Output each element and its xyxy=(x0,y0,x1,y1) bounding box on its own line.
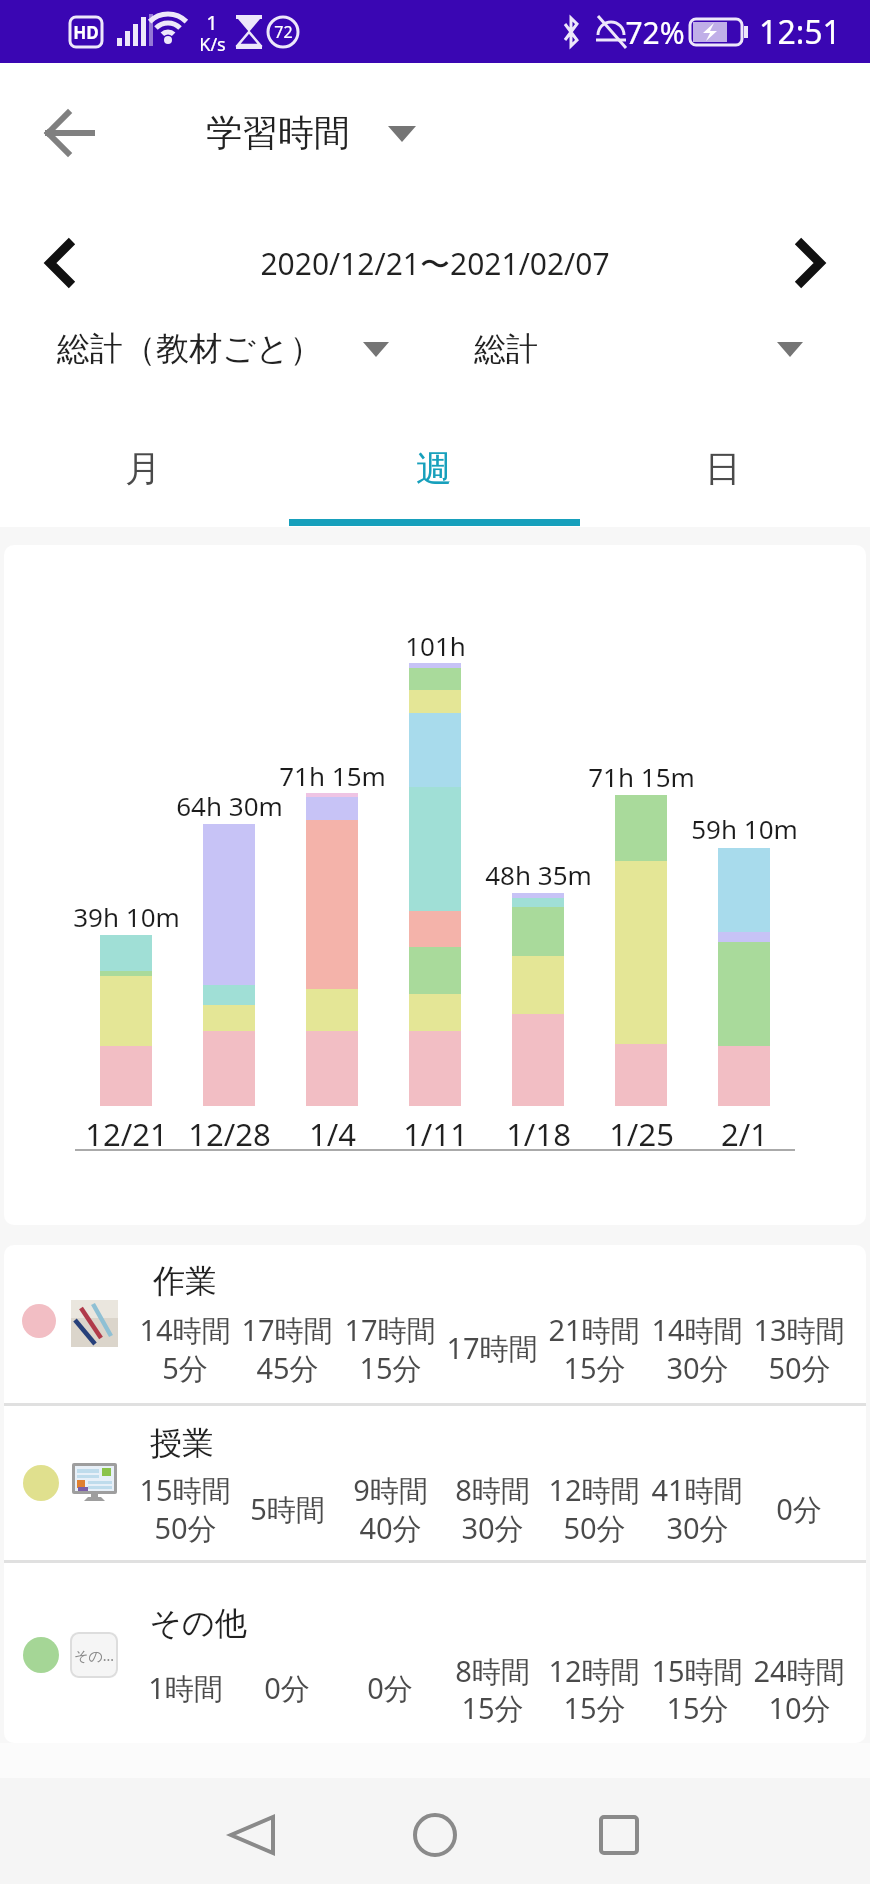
staticText: 1時間 xyxy=(148,1668,223,1708)
button[interactable] xyxy=(576,1793,661,1878)
button[interactable] xyxy=(580,430,870,527)
staticText: 64h 30m xyxy=(176,788,283,823)
staticText: 8時間 xyxy=(455,1470,530,1510)
button[interactable] xyxy=(392,1793,477,1878)
staticText: 12時間 xyxy=(548,1470,640,1510)
staticText: 50分 xyxy=(563,1508,626,1548)
staticText: 72 xyxy=(274,21,293,43)
staticText: 15時間 xyxy=(651,1651,743,1691)
staticText: 15時間 xyxy=(139,1470,231,1510)
staticText: 2/1 xyxy=(721,1113,768,1155)
staticText: 1/25 xyxy=(609,1113,674,1155)
staticText: 15分 xyxy=(666,1688,729,1728)
button[interactable] xyxy=(210,1793,295,1878)
staticText: 0分 xyxy=(367,1668,413,1708)
staticText: 2020/12/21〜2021/02/07 xyxy=(260,243,610,284)
staticText: 15分 xyxy=(563,1688,626,1728)
button[interactable] xyxy=(4,1406,866,1560)
staticText: 12:51 xyxy=(759,10,841,54)
staticText: K/s xyxy=(199,32,226,57)
staticText: 0分 xyxy=(776,1489,822,1529)
staticText: 13時間 xyxy=(753,1310,845,1350)
staticText: 日 xyxy=(705,446,741,491)
staticText: 71h 15m xyxy=(279,758,386,793)
staticText: 0分 xyxy=(264,1668,310,1708)
staticText: 学習時間 xyxy=(206,110,350,155)
staticText: 総計 xyxy=(474,329,538,369)
staticText: 30分 xyxy=(461,1508,524,1548)
staticText: 15分 xyxy=(359,1348,422,1388)
staticText: 50分 xyxy=(154,1508,217,1548)
staticText: 45分 xyxy=(256,1348,319,1388)
staticText: 48h 35m xyxy=(485,857,592,892)
staticText: 週 xyxy=(416,446,452,491)
button[interactable] xyxy=(40,318,400,380)
staticText: 14時間 xyxy=(139,1310,231,1350)
staticText: その他 xyxy=(149,1603,247,1643)
staticText: HD xyxy=(73,21,99,44)
staticText: 15分 xyxy=(563,1348,626,1388)
staticText: 授業 xyxy=(150,1423,214,1463)
staticText: 15分 xyxy=(461,1688,524,1728)
staticText: 5分 xyxy=(162,1348,208,1388)
staticText: 12時間 xyxy=(548,1651,640,1691)
staticText: 30分 xyxy=(666,1508,729,1548)
staticText: 101h xyxy=(405,628,466,663)
staticText: 17時間 xyxy=(241,1310,333,1350)
staticText: 作業 xyxy=(153,1261,217,1301)
staticText: 1/11 xyxy=(403,1113,468,1155)
staticText: 21時間 xyxy=(548,1310,640,1350)
staticText: 総計（教材ごと） xyxy=(57,328,323,370)
staticText: 1/18 xyxy=(506,1113,571,1155)
staticText: 1/4 xyxy=(309,1113,356,1155)
staticText: 71h 15m xyxy=(588,759,695,794)
button[interactable] xyxy=(460,318,820,380)
button[interactable] xyxy=(4,1245,866,1403)
staticText: 30分 xyxy=(666,1348,729,1388)
staticText: 14時間 xyxy=(651,1310,743,1350)
staticText: 8時間 xyxy=(455,1651,530,1691)
staticText: 39h 10m xyxy=(73,899,180,934)
button[interactable] xyxy=(4,1563,866,1743)
button[interactable] xyxy=(0,430,290,527)
staticText: 17時間 xyxy=(446,1328,538,1368)
staticText: 12/28 xyxy=(188,1113,271,1155)
staticText: 月 xyxy=(125,446,161,491)
staticText: 17時間 xyxy=(344,1310,436,1350)
staticText: 72% xyxy=(625,12,685,53)
staticText: 24時間 xyxy=(753,1651,845,1691)
staticText: 12/21 xyxy=(85,1113,168,1155)
staticText: 5時間 xyxy=(250,1489,325,1529)
staticText: その... xyxy=(74,1646,114,1665)
staticText: 1 xyxy=(206,9,218,36)
button[interactable] xyxy=(30,233,90,293)
staticText: 40分 xyxy=(359,1508,422,1548)
staticText: 41時間 xyxy=(651,1470,743,1510)
button[interactable] xyxy=(40,103,100,163)
button[interactable] xyxy=(780,233,840,293)
staticText: 50分 xyxy=(768,1348,831,1388)
button[interactable] xyxy=(180,100,440,164)
staticText: 10分 xyxy=(768,1688,831,1728)
staticText: 59h 10m xyxy=(691,811,798,846)
staticText: 9時間 xyxy=(353,1470,428,1510)
button[interactable] xyxy=(290,430,580,527)
